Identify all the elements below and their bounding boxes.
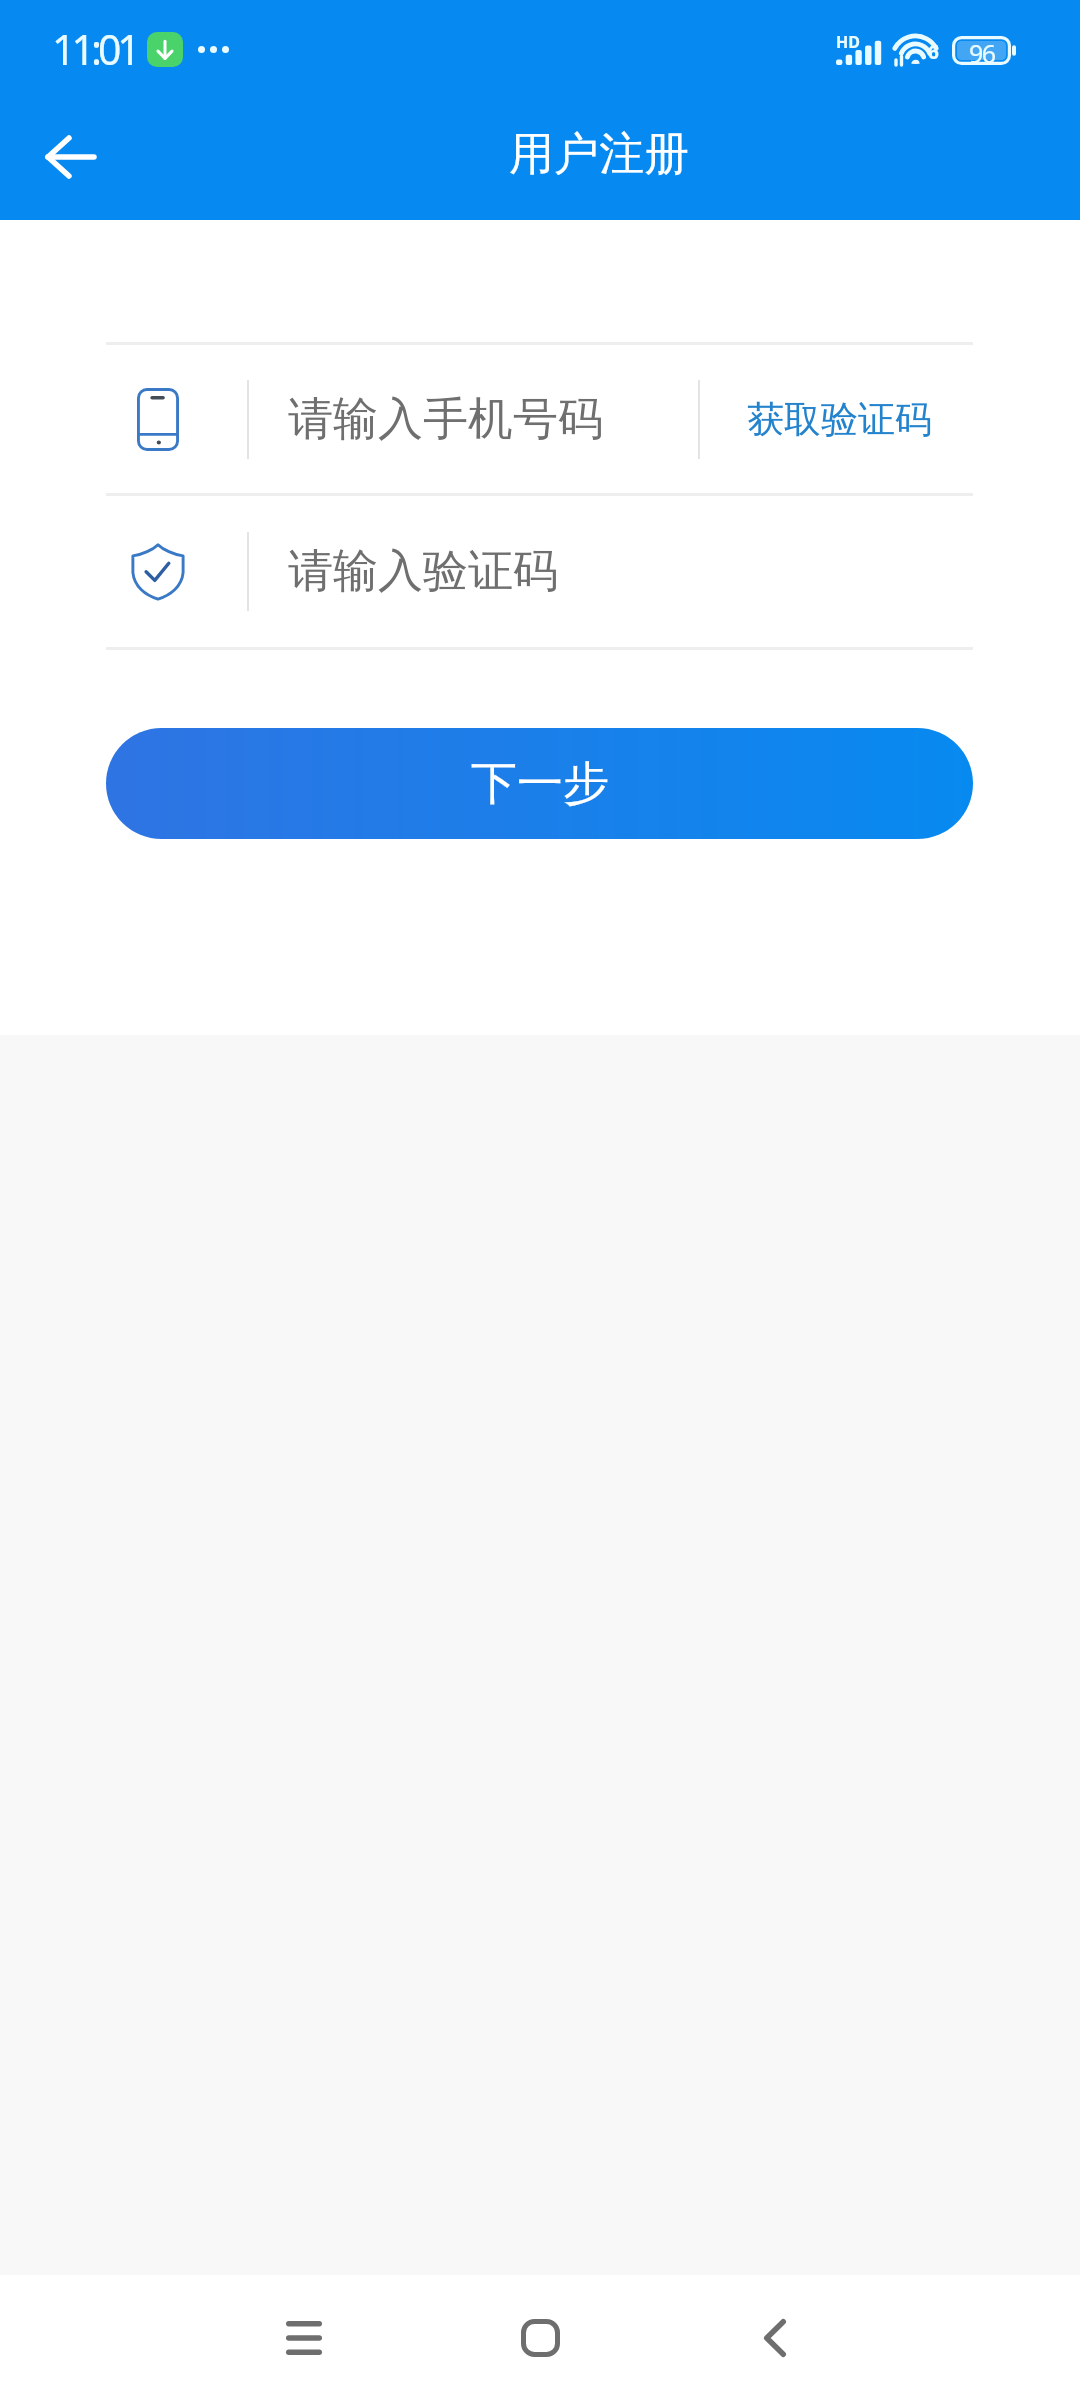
staticText: 请输入手机号码	[288, 391, 603, 448]
button[interactable]: Recent apps	[236, 2275, 372, 2400]
staticText: 96	[969, 36, 995, 65]
button[interactable]: 请输入手机号码	[0, 345, 698, 493]
button[interactable]: 请输入验证码	[0, 496, 1080, 647]
staticText: 6	[928, 39, 939, 65]
staticText: 获取验证码	[747, 396, 932, 443]
staticText: 用户注册	[509, 126, 689, 183]
button[interactable]: Home	[472, 2275, 608, 2400]
button[interactable]: Back	[0, 88, 118, 220]
staticText: 请输入验证码	[288, 543, 558, 600]
staticText: HD	[836, 31, 860, 53]
staticText: 11:01	[52, 21, 137, 77]
staticText: 下一步	[471, 755, 609, 813]
button[interactable]: 下一步	[106, 728, 973, 839]
button[interactable]: Back	[707, 2275, 843, 2400]
button[interactable]: 获取验证码	[698, 345, 1080, 493]
